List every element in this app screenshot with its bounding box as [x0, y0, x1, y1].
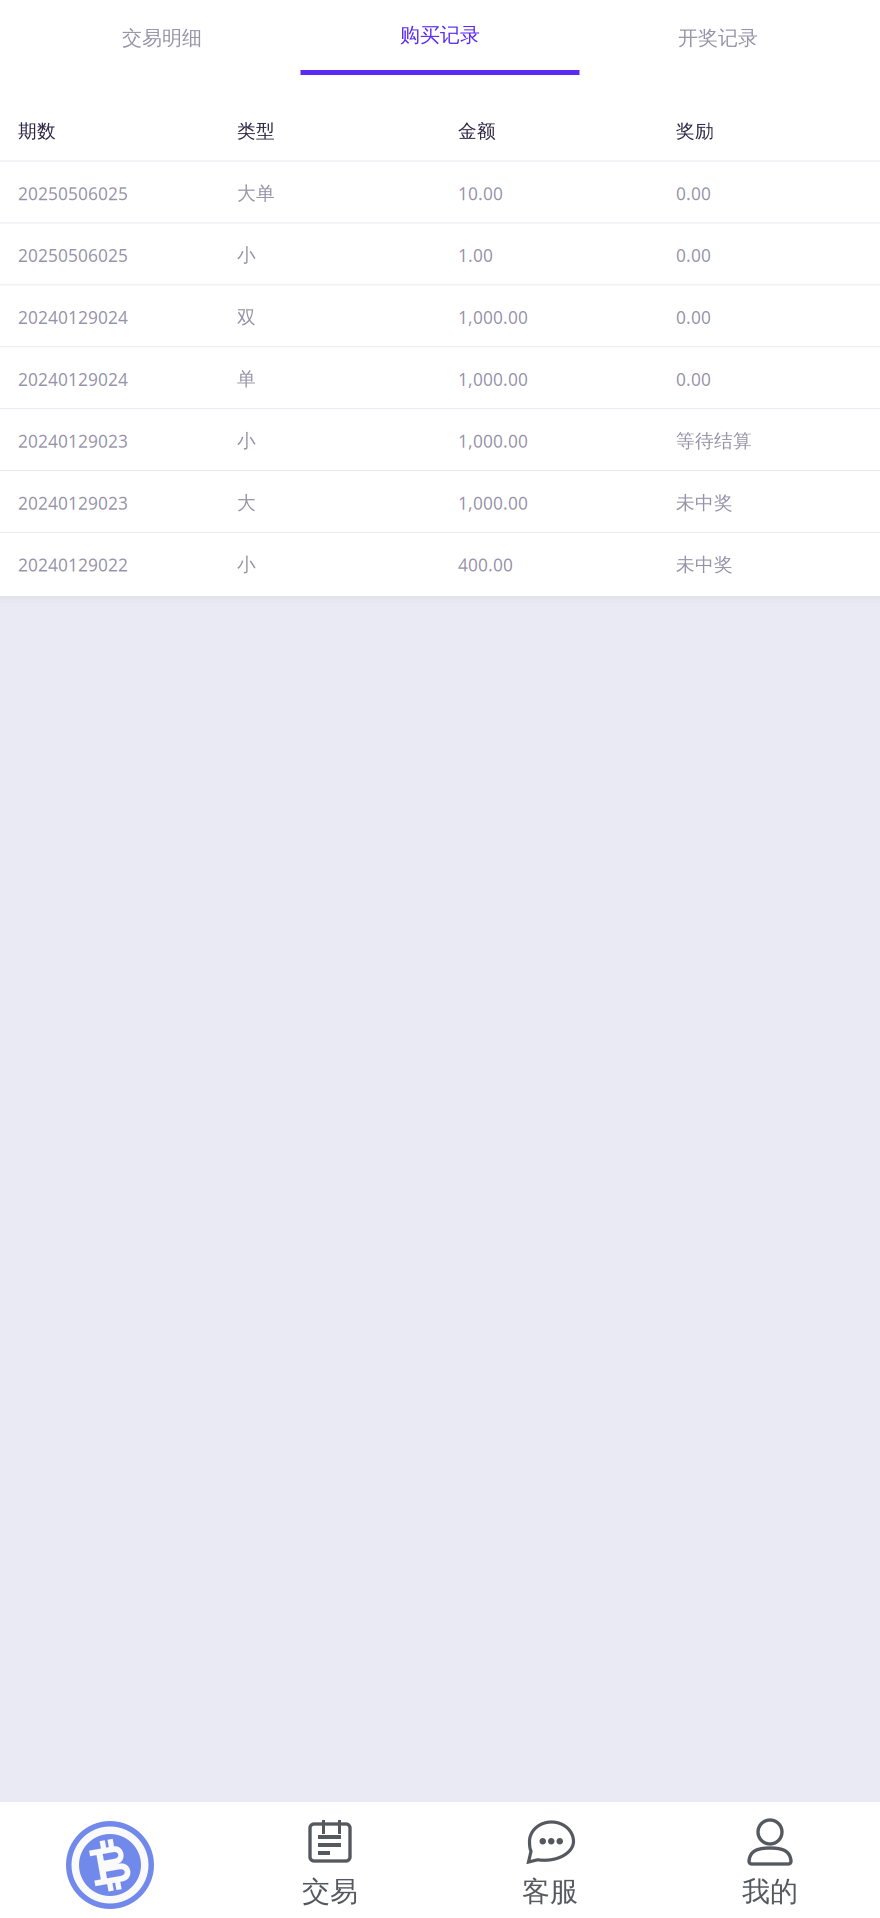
staticText: 1,000.00: [458, 306, 528, 329]
staticText: 期数: [18, 119, 56, 143]
button[interactable]: 开奖记录: [579, 0, 857, 76]
staticText: 我的: [742, 1874, 798, 1909]
staticText: 未中奖: [676, 553, 733, 577]
staticText: 20250506025: [18, 182, 128, 205]
staticText: 1,000.00: [458, 491, 528, 514]
staticText: 双: [237, 305, 256, 329]
staticText: 0.00: [676, 182, 711, 205]
staticText: 未中奖: [676, 491, 733, 515]
staticText: 20240129024: [18, 306, 128, 329]
staticText: 20240129022: [18, 553, 128, 576]
button[interactable]: 购买记录: [301, 0, 579, 76]
button[interactable]: 交易: [220, 1802, 440, 1918]
staticText: 10.00: [458, 182, 503, 205]
button[interactable]: 客服: [440, 1802, 660, 1918]
button[interactable]: Bitcoin: [0, 1802, 220, 1918]
staticText: 大: [237, 491, 256, 515]
staticText: 大单: [237, 182, 275, 205]
button[interactable]: 我的: [660, 1802, 880, 1918]
staticText: 400.00: [458, 553, 513, 576]
staticText: 20250506025: [18, 244, 128, 267]
staticText: 开奖记录: [678, 25, 758, 51]
staticText: 小: [237, 553, 256, 577]
staticText: 类型: [237, 119, 275, 143]
staticText: 0.00: [676, 306, 711, 329]
staticText: 20240129023: [18, 429, 128, 452]
staticText: 小: [237, 244, 256, 267]
staticText: 小: [237, 429, 256, 453]
staticText: 0.00: [676, 368, 711, 391]
staticText: 客服: [522, 1874, 578, 1909]
staticText: 1,000.00: [458, 368, 528, 391]
staticText: 交易: [302, 1874, 358, 1909]
staticText: 1,000.00: [458, 429, 528, 452]
staticText: 等待结算: [676, 429, 752, 453]
staticText: 奖励: [676, 119, 714, 143]
staticText: 20240129024: [18, 368, 128, 391]
staticText: 购买记录: [400, 22, 480, 48]
staticText: 单: [237, 367, 256, 391]
staticText: 20240129023: [18, 491, 128, 514]
button[interactable]: 交易明细: [23, 0, 301, 76]
staticText: 交易明细: [122, 25, 202, 51]
staticText: 金额: [458, 119, 496, 143]
staticText: 0.00: [676, 244, 711, 267]
staticText: 1.00: [458, 244, 493, 267]
